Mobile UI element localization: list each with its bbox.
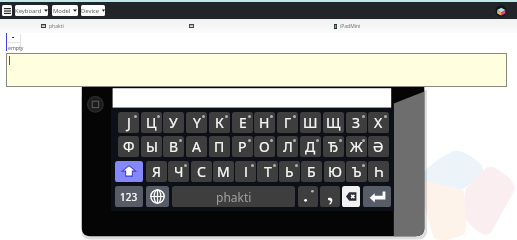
button[interactable]: Ј xyxy=(118,112,139,133)
button[interactable]: Ц xyxy=(141,112,162,133)
staticText: phakti xyxy=(49,23,64,30)
button[interactable]: Т xyxy=(257,161,278,182)
staticText: К xyxy=(215,113,224,132)
button[interactable]: Keyboard xyxy=(15,5,48,16)
staticText: Ј xyxy=(127,113,131,132)
staticText: Е xyxy=(239,113,247,132)
button[interactable]: 123 xyxy=(115,186,143,207)
staticText: Ц xyxy=(146,113,157,132)
staticText: Н xyxy=(259,113,270,132)
other: Enter xyxy=(363,186,391,207)
button[interactable]: С xyxy=(191,161,212,182)
staticText: А xyxy=(192,137,201,156)
button[interactable]: Enter xyxy=(363,186,391,207)
staticText: Ъ xyxy=(352,162,362,181)
button[interactable]: Model xyxy=(52,5,78,16)
button[interactable]: iPadMini xyxy=(325,19,370,33)
staticText: У xyxy=(169,113,178,132)
button[interactable]: phakti xyxy=(172,186,295,207)
button[interactable]: Ь xyxy=(279,161,300,182)
button[interactable]: Ж xyxy=(346,136,367,157)
button[interactable]: Logo xyxy=(495,5,507,17)
staticText: 123 xyxy=(120,190,138,204)
other: Backspace xyxy=(342,186,360,207)
button[interactable]: І xyxy=(235,161,256,182)
staticText: Р xyxy=(238,137,247,156)
button[interactable] xyxy=(298,186,318,207)
other: Shift xyxy=(115,161,143,182)
staticText: Ю xyxy=(328,162,342,181)
staticText: П xyxy=(214,137,225,156)
staticText: iPadMini xyxy=(340,23,361,30)
button[interactable]: phakti xyxy=(31,19,74,33)
button[interactable]: Я xyxy=(146,161,167,182)
staticText: Һ xyxy=(374,162,384,181)
other: Change language xyxy=(146,186,169,207)
button[interactable]: Backspace xyxy=(342,186,360,207)
button[interactable]: Н xyxy=(254,112,275,133)
staticText: Ү xyxy=(193,113,201,132)
staticText: Device xyxy=(81,7,100,15)
staticText: Д xyxy=(305,137,316,156)
staticText: phakti xyxy=(216,189,252,205)
button[interactable]: Ю xyxy=(324,161,345,182)
staticText: Ђ xyxy=(328,137,339,156)
staticText: С xyxy=(197,162,206,181)
staticText: М xyxy=(217,162,230,181)
button[interactable]: У xyxy=(163,112,184,133)
staticText: Ш xyxy=(303,113,318,132)
button[interactable]: Device xyxy=(81,5,105,16)
button[interactable]: Ш xyxy=(300,112,321,133)
button[interactable]: Ђ xyxy=(323,136,344,157)
staticText: Г xyxy=(284,113,292,132)
button[interactable]: Х xyxy=(368,112,389,133)
staticText: Keyboard xyxy=(15,7,42,15)
button[interactable]: Ы xyxy=(141,136,162,157)
button[interactable]: Д xyxy=(300,136,321,157)
button[interactable]: Ъ xyxy=(346,161,367,182)
button[interactable]: Щ xyxy=(323,112,344,133)
staticText: О xyxy=(259,137,270,156)
staticText: І xyxy=(244,162,248,181)
staticText: Щ xyxy=(326,113,341,132)
button[interactable]: П xyxy=(209,136,230,157)
staticText: Ь xyxy=(285,162,294,181)
button[interactable] xyxy=(320,186,340,207)
button[interactable]: Г xyxy=(277,112,298,133)
button[interactable]: Б xyxy=(301,161,322,182)
staticText: Ф xyxy=(123,137,135,156)
button[interactable]: Ф xyxy=(118,136,139,157)
staticText: Т xyxy=(264,162,272,181)
button[interactable]: Р xyxy=(232,136,253,157)
button[interactable]: Ә xyxy=(368,136,389,157)
button[interactable]: Menu xyxy=(2,5,12,16)
staticText: Ч xyxy=(174,162,184,181)
staticText: З xyxy=(352,113,361,132)
staticText: Б xyxy=(307,162,316,181)
button[interactable]: З xyxy=(346,112,367,133)
button[interactable]: Shift xyxy=(115,161,143,182)
staticText: Ы xyxy=(146,137,158,156)
button[interactable]: Ү xyxy=(186,112,207,133)
button[interactable]: А xyxy=(186,136,207,157)
button[interactable]: М xyxy=(213,161,234,182)
button[interactable]: О xyxy=(254,136,275,157)
button[interactable]: В xyxy=(163,136,184,157)
staticText: Ә xyxy=(373,137,384,156)
button[interactable]: Һ xyxy=(368,161,389,182)
staticText: В xyxy=(169,137,179,156)
staticText: Model xyxy=(53,7,71,15)
staticText: Я xyxy=(152,162,161,181)
staticText: empty xyxy=(8,44,24,51)
button[interactable]: Ч xyxy=(168,161,189,182)
button[interactable]: Preview window xyxy=(180,19,202,33)
button[interactable]: Л xyxy=(277,136,298,157)
button[interactable]: Е xyxy=(232,112,253,133)
staticText: Л xyxy=(283,137,293,156)
button[interactable]: К xyxy=(209,112,230,133)
staticText: Ж xyxy=(350,137,363,156)
button[interactable]: Change language xyxy=(146,186,169,207)
staticText: Х xyxy=(374,113,383,132)
